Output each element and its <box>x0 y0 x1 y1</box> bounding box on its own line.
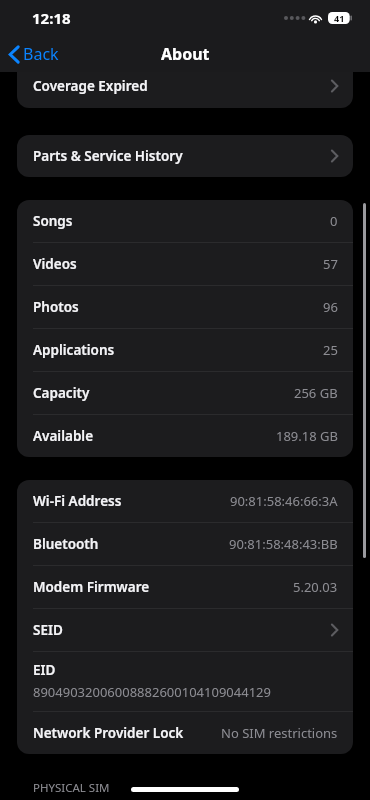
staticText: Parts & Service History <box>33 147 183 165</box>
staticText: Back <box>23 43 59 65</box>
staticText: 41 <box>334 12 345 24</box>
button[interactable]: Bluetooth <box>17 523 353 565</box>
staticText: 12:18 <box>32 8 71 28</box>
button[interactable]: SEID <box>17 609 353 651</box>
button[interactable]: Applications <box>17 329 353 371</box>
staticText: Bluetooth <box>33 535 99 553</box>
button[interactable]: Wi-Fi Address <box>17 480 353 522</box>
button[interactable]: Coverage Expired <box>17 72 353 100</box>
staticText: Videos <box>33 255 77 273</box>
staticText: 0 <box>330 212 338 230</box>
staticText: 90:81:58:48:43:BB <box>229 535 338 553</box>
button[interactable]: Back <box>0 38 69 70</box>
button[interactable]: Modem Firmware <box>17 566 353 608</box>
staticText: 96 <box>323 298 338 316</box>
staticText: Songs <box>33 212 73 230</box>
button[interactable]: Photos <box>17 286 353 328</box>
staticText: Applications <box>33 341 115 359</box>
button[interactable]: Videos <box>17 243 353 285</box>
staticText: About <box>161 43 210 65</box>
staticText: PHYSICAL SIM <box>33 780 110 796</box>
staticText: Wi-Fi Address <box>33 492 122 510</box>
button[interactable]: Parts & Service History <box>17 135 353 177</box>
staticText: Available <box>33 427 94 445</box>
staticText: SEID <box>33 621 63 639</box>
staticText: No SIM restrictions <box>221 724 338 742</box>
staticText: 189.18 GB <box>276 427 338 445</box>
staticText: 25 <box>323 341 338 359</box>
staticText: Modem Firmware <box>33 578 150 596</box>
staticText: Coverage Expired <box>33 77 148 95</box>
staticText: 57 <box>323 255 338 273</box>
button[interactable]: Network Provider Lock <box>17 712 353 754</box>
button[interactable]: Songs <box>17 200 353 242</box>
staticText: 5.20.03 <box>293 578 338 596</box>
staticText: Network Provider Lock <box>33 724 184 742</box>
staticText: Capacity <box>33 384 90 402</box>
button[interactable]: Available <box>17 415 353 457</box>
staticText: EID <box>33 661 56 679</box>
staticText: Photos <box>33 298 79 316</box>
staticText: 256 GB <box>294 384 338 402</box>
button[interactable]: Capacity <box>17 372 353 414</box>
button[interactable]: EID <box>17 652 353 711</box>
staticText: 90:81:58:46:66:3A <box>230 492 338 510</box>
staticText: 89049032006008882600104109044129 <box>33 683 271 701</box>
